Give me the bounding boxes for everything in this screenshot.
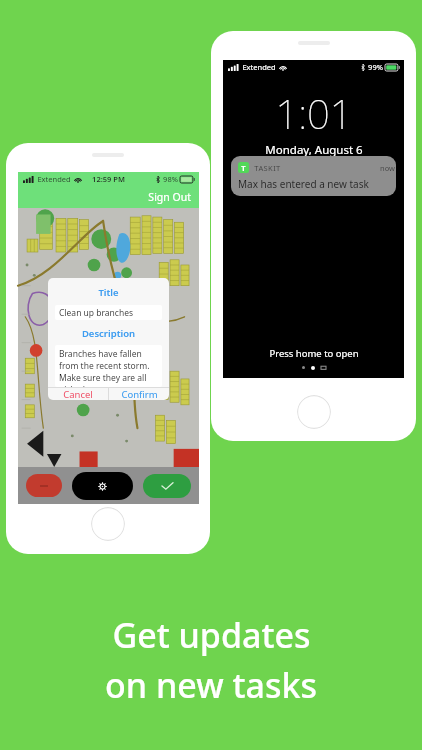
staticText: Max has entered a new task (238, 177, 369, 191)
staticText: on new tasks (105, 662, 317, 708)
staticText: Clean up branches (59, 307, 134, 319)
button[interactable]: Cancel (48, 388, 108, 400)
staticText: Confirm (121, 388, 158, 400)
button[interactable]: Branches have fallen from the recent sto… (55, 345, 162, 387)
staticText: Press home to open (269, 347, 359, 360)
staticText: Description (48, 327, 169, 340)
button[interactable]: Delete (26, 474, 62, 497)
button[interactable]: T (231, 156, 396, 196)
staticText: TASKIT (254, 163, 281, 173)
staticText: 12:59 PM (92, 174, 125, 184)
staticText: Get updates (112, 612, 311, 658)
staticText: Extended (242, 62, 276, 72)
staticText: Title (48, 286, 169, 299)
staticText: now (380, 163, 395, 173)
button[interactable]: Settings (72, 472, 133, 500)
button[interactable]: Confirm (143, 474, 191, 498)
staticText: 1:01 (275, 86, 353, 140)
button[interactable]: Home (91, 507, 125, 541)
button[interactable]: Confirm (109, 388, 169, 400)
staticText: Monday, August 6 (265, 142, 363, 158)
button[interactable]: Clean up branches (55, 305, 162, 320)
staticText: Extended (37, 174, 71, 184)
staticText: 98% (163, 174, 178, 184)
staticText: T (241, 163, 246, 173)
staticText: Branches have fallen from the recent sto… (59, 348, 159, 387)
staticText: Cancel (63, 388, 93, 400)
staticText: 99% (368, 62, 383, 72)
button[interactable]: Home (297, 395, 331, 429)
button[interactable]: Sign Out (148, 190, 191, 204)
